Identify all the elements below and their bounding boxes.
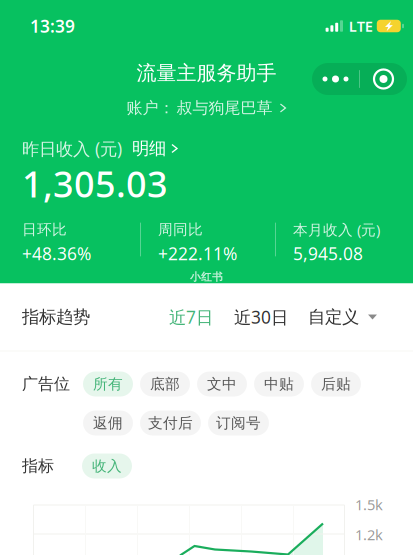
staticText: 13:39 — [30, 14, 75, 37]
staticText: 自定义 — [308, 306, 359, 328]
button[interactable]: 收入 — [82, 453, 132, 478]
button[interactable]: More — [312, 63, 359, 95]
staticText: 支付后 — [148, 414, 193, 432]
button[interactable]: 底部 — [140, 371, 190, 396]
button[interactable]: 近7日 — [169, 305, 213, 328]
button[interactable]: 所有 — [83, 371, 133, 396]
staticText: 近7日 — [169, 305, 213, 328]
staticText: 明细 — [132, 138, 166, 159]
staticText: 昨日收入 (元) — [22, 137, 122, 160]
button[interactable]: 近30日 — [213, 305, 288, 328]
staticText: 广告位 — [22, 374, 70, 394]
button[interactable]: 后贴 — [311, 371, 361, 396]
button[interactable]: 账户： — [126, 99, 287, 117]
staticText: 底部 — [150, 375, 180, 393]
staticText: 所有 — [93, 375, 123, 393]
staticText: 近30日 — [234, 305, 288, 328]
staticText: +48.36% — [22, 242, 91, 265]
staticText: 1.5k — [355, 495, 383, 514]
staticText: +222.11% — [158, 242, 237, 265]
staticText: 收入 — [92, 457, 122, 475]
staticText: 指标 — [22, 456, 54, 476]
button[interactable]: 支付后 — [140, 410, 201, 435]
staticText: 本月收入 (元) — [293, 220, 380, 239]
staticText: 订阅号 — [216, 414, 261, 432]
button[interactable]: 自定义 — [288, 306, 377, 328]
staticText: 文中 — [207, 375, 237, 393]
button[interactable]: Close — [360, 63, 407, 95]
staticText: 周同比 — [158, 220, 203, 238]
staticText: 后贴 — [321, 375, 351, 393]
staticText: 返佣 — [93, 414, 123, 432]
button[interactable]: 返佣 — [83, 410, 133, 435]
staticText: 指标趋势 — [22, 306, 90, 328]
staticText: 日环比 — [22, 220, 67, 238]
staticText: 1.2k — [355, 525, 383, 544]
staticText: 账户： — [126, 98, 174, 118]
staticText: LTE — [349, 16, 373, 36]
staticText: 流量主服务助手 — [136, 61, 276, 85]
button[interactable]: 中贴 — [254, 371, 304, 396]
staticText: 5,945.08 — [293, 242, 363, 265]
button[interactable]: 昨日收入 (元) — [22, 138, 178, 158]
staticText: 1,305.03 — [22, 160, 168, 207]
staticText: 中贴 — [264, 375, 294, 393]
staticText: 小红书 — [190, 270, 223, 283]
button[interactable]: 订阅号 — [208, 410, 269, 435]
button[interactable]: 文中 — [197, 371, 247, 396]
staticText: 叔与狗尾巴草 — [176, 98, 272, 118]
